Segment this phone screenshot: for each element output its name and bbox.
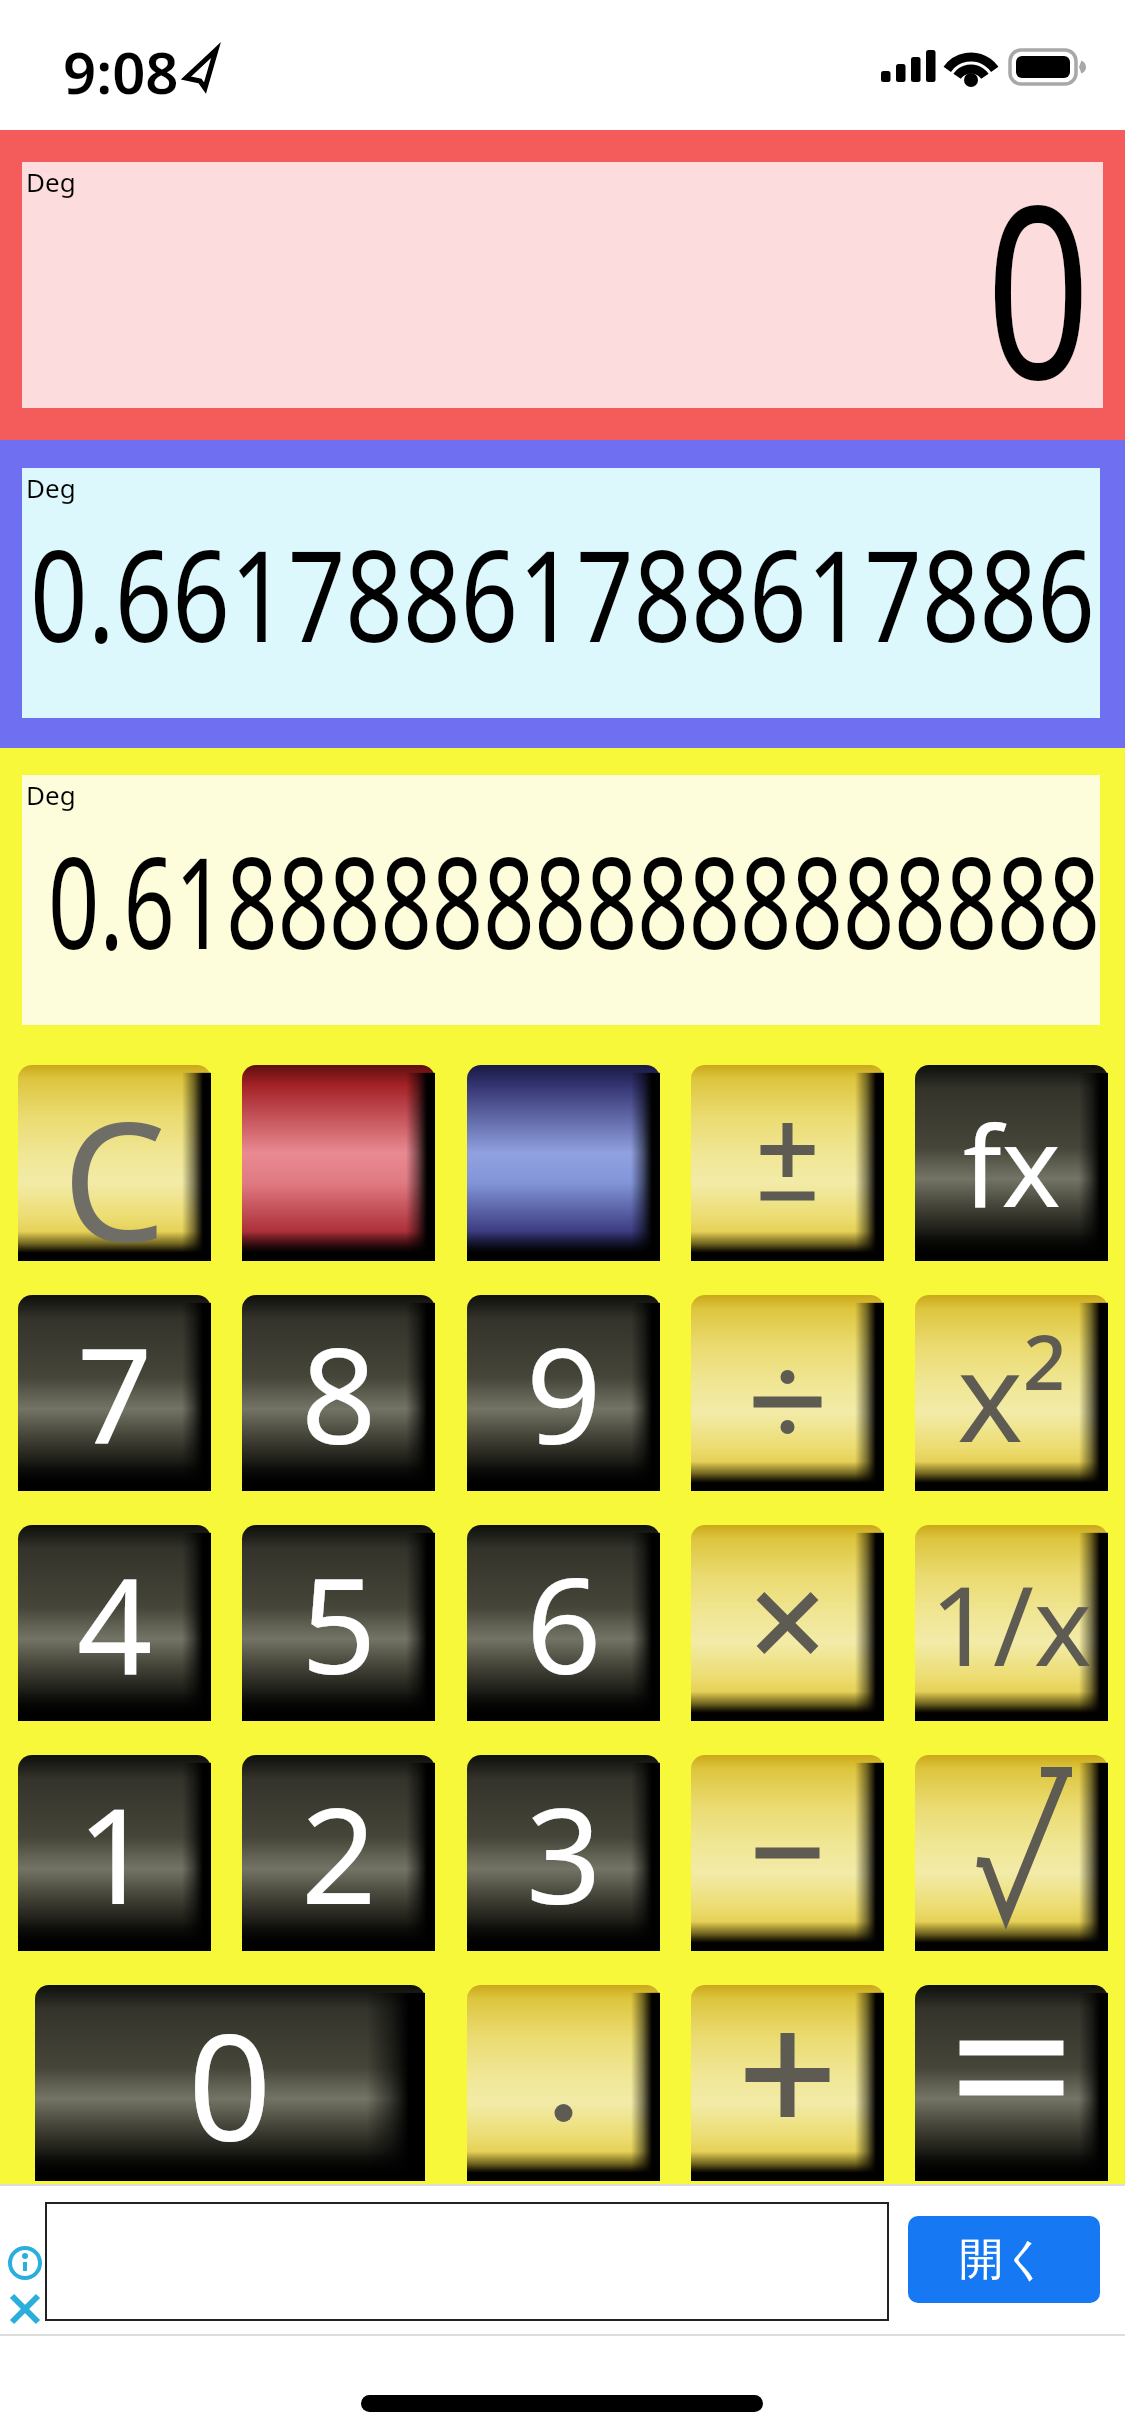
button[interactable] [691,1525,884,1721]
button[interactable]: fx [915,1065,1108,1261]
button[interactable] [242,1065,435,1261]
button[interactable]: 0 [35,1985,425,2181]
staticText: x² [957,1308,1067,1478]
staticText: 0.6188888888888888888 [48,814,1100,986]
button[interactable]: 2 [242,1755,435,1951]
button[interactable] [467,1985,660,2181]
staticText: 1/x [930,1548,1093,1698]
button[interactable] [691,1755,884,1951]
button[interactable]: 6 [467,1525,660,1721]
button[interactable] [691,1065,884,1261]
staticText: 6 [526,1533,602,1713]
button[interactable]: 9 [467,1295,660,1491]
button[interactable]: 7 [18,1295,211,1491]
button[interactable] [915,1985,1108,2181]
button[interactable] [915,1755,1108,1951]
button[interactable] [691,1985,884,2181]
staticText: 2 [301,1763,377,1943]
staticText: Deg [26,164,76,199]
button[interactable]: 8 [242,1295,435,1491]
button[interactable]: 開く [908,2216,1100,2303]
button[interactable]: 1/x [915,1525,1108,1721]
button[interactable]: 4 [18,1525,211,1721]
button[interactable]: 1 [18,1755,211,1951]
staticText: 9:08 [63,32,179,111]
staticText: fx [963,1087,1061,1240]
staticText: 1 [77,1763,153,1943]
staticText: 9 [526,1303,602,1483]
staticText: 8 [301,1303,377,1483]
button[interactable]: 5 [242,1525,435,1721]
staticText: 0 [188,1985,272,2181]
button[interactable]: 3 [467,1755,660,1951]
staticText: 0.66178861788617886 [30,507,1096,679]
staticText: Deg [26,470,76,505]
staticText: 5 [301,1533,377,1713]
staticText: 開く [959,2232,1049,2287]
staticText: 3 [526,1763,602,1943]
staticText: 0 [986,122,1091,449]
staticText: C [62,1065,167,1261]
button[interactable]: C [18,1065,211,1261]
button[interactable] [467,1065,660,1261]
staticText: Deg [26,777,76,812]
button[interactable] [691,1295,884,1491]
staticText: 4 [77,1533,153,1713]
button[interactable]: x² [915,1295,1108,1491]
staticText: 7 [77,1303,153,1483]
